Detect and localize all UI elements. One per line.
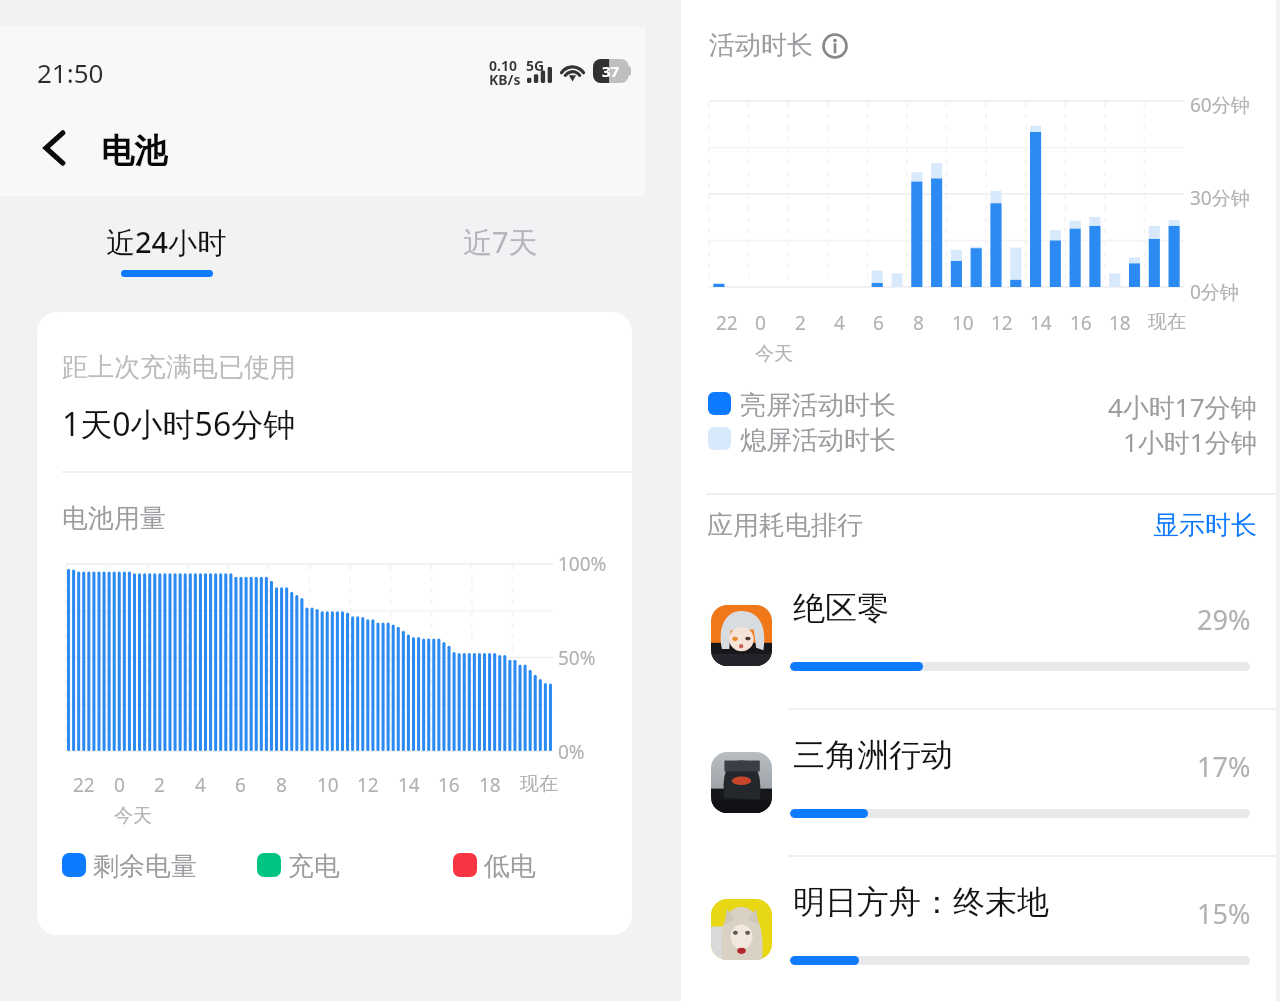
- button[interactable]: 近24小时: [0, 196, 332, 290]
- staticText: 距上次充满电已使用: [62, 351, 296, 384]
- button[interactable]: 近7天: [332, 196, 668, 290]
- button[interactable]: 明日方舟：终末地: [681, 870, 1276, 1001]
- button[interactable]: Info: [822, 33, 848, 59]
- staticText: 1天0小时56分钟: [62, 402, 296, 446]
- staticText: 显示时长: [1153, 509, 1257, 542]
- staticText: 电池: [101, 130, 167, 172]
- staticText: 22: [716, 310, 738, 336]
- staticText: 10: [952, 310, 974, 336]
- staticText: 近24小时: [106, 222, 227, 262]
- staticText: 活动时长: [709, 29, 813, 62]
- staticText: 4: [195, 772, 206, 798]
- staticText: 10: [317, 772, 339, 798]
- staticText: 近7天: [463, 222, 538, 262]
- staticText: 0.10: [489, 56, 517, 75]
- staticText: 现在: [1148, 310, 1186, 334]
- staticText: 2: [795, 310, 806, 336]
- staticText: 6: [235, 772, 246, 798]
- staticText: 22: [73, 772, 95, 798]
- staticText: 16: [1070, 310, 1092, 336]
- staticText: 50%: [558, 645, 596, 671]
- staticText: 12: [991, 310, 1013, 336]
- staticText: 应用耗电排行: [707, 509, 863, 542]
- staticText: 14: [398, 772, 420, 798]
- staticText: 充电: [288, 850, 340, 883]
- staticText: 现在: [520, 772, 558, 796]
- staticText: 6: [873, 310, 884, 336]
- staticText: 60分钟: [1190, 92, 1250, 118]
- staticText: 0: [755, 310, 766, 336]
- staticText: 4: [834, 310, 845, 336]
- staticText: 0%: [558, 739, 585, 765]
- staticText: 熄屏活动时长: [740, 424, 896, 457]
- staticText: 0分钟: [1190, 279, 1239, 305]
- staticText: 14: [1030, 310, 1052, 336]
- staticText: KB/s: [489, 70, 521, 89]
- staticText: 亮屏活动时长: [740, 389, 896, 422]
- staticText: 5G: [526, 56, 545, 75]
- staticText: 1小时1分钟: [1123, 424, 1257, 460]
- staticText: 17%: [1197, 748, 1251, 785]
- staticText: 8: [913, 310, 924, 336]
- staticText: 18: [1109, 310, 1131, 336]
- staticText: 三角洲行动: [793, 735, 953, 775]
- staticText: 今天: [114, 804, 152, 828]
- staticText: 15%: [1197, 895, 1251, 932]
- button[interactable]: 显示时长: [1153, 509, 1257, 542]
- staticText: 2: [154, 772, 165, 798]
- button[interactable]: 三角洲行动: [681, 723, 1276, 870]
- staticText: 16: [438, 772, 460, 798]
- staticText: 21:50: [37, 55, 104, 90]
- staticText: 今天: [755, 342, 793, 366]
- staticText: 绝区零: [793, 588, 889, 628]
- staticText: 剩余电量: [93, 850, 197, 883]
- staticText: 100%: [558, 551, 607, 577]
- button[interactable]: Back: [26, 120, 82, 176]
- staticText: 低电: [484, 850, 536, 883]
- staticText: 12: [357, 772, 379, 798]
- staticText: 30分钟: [1190, 185, 1250, 211]
- button[interactable]: 绝区零: [681, 576, 1276, 723]
- staticText: 37: [602, 61, 620, 81]
- staticText: 0: [114, 772, 125, 798]
- staticText: 4小时17分钟: [1108, 389, 1257, 425]
- staticText: 8: [276, 772, 287, 798]
- staticText: 明日方舟：终末地: [793, 882, 1049, 922]
- staticText: 电池用量: [62, 502, 166, 535]
- staticText: 29%: [1197, 601, 1251, 638]
- staticText: 18: [479, 772, 501, 798]
